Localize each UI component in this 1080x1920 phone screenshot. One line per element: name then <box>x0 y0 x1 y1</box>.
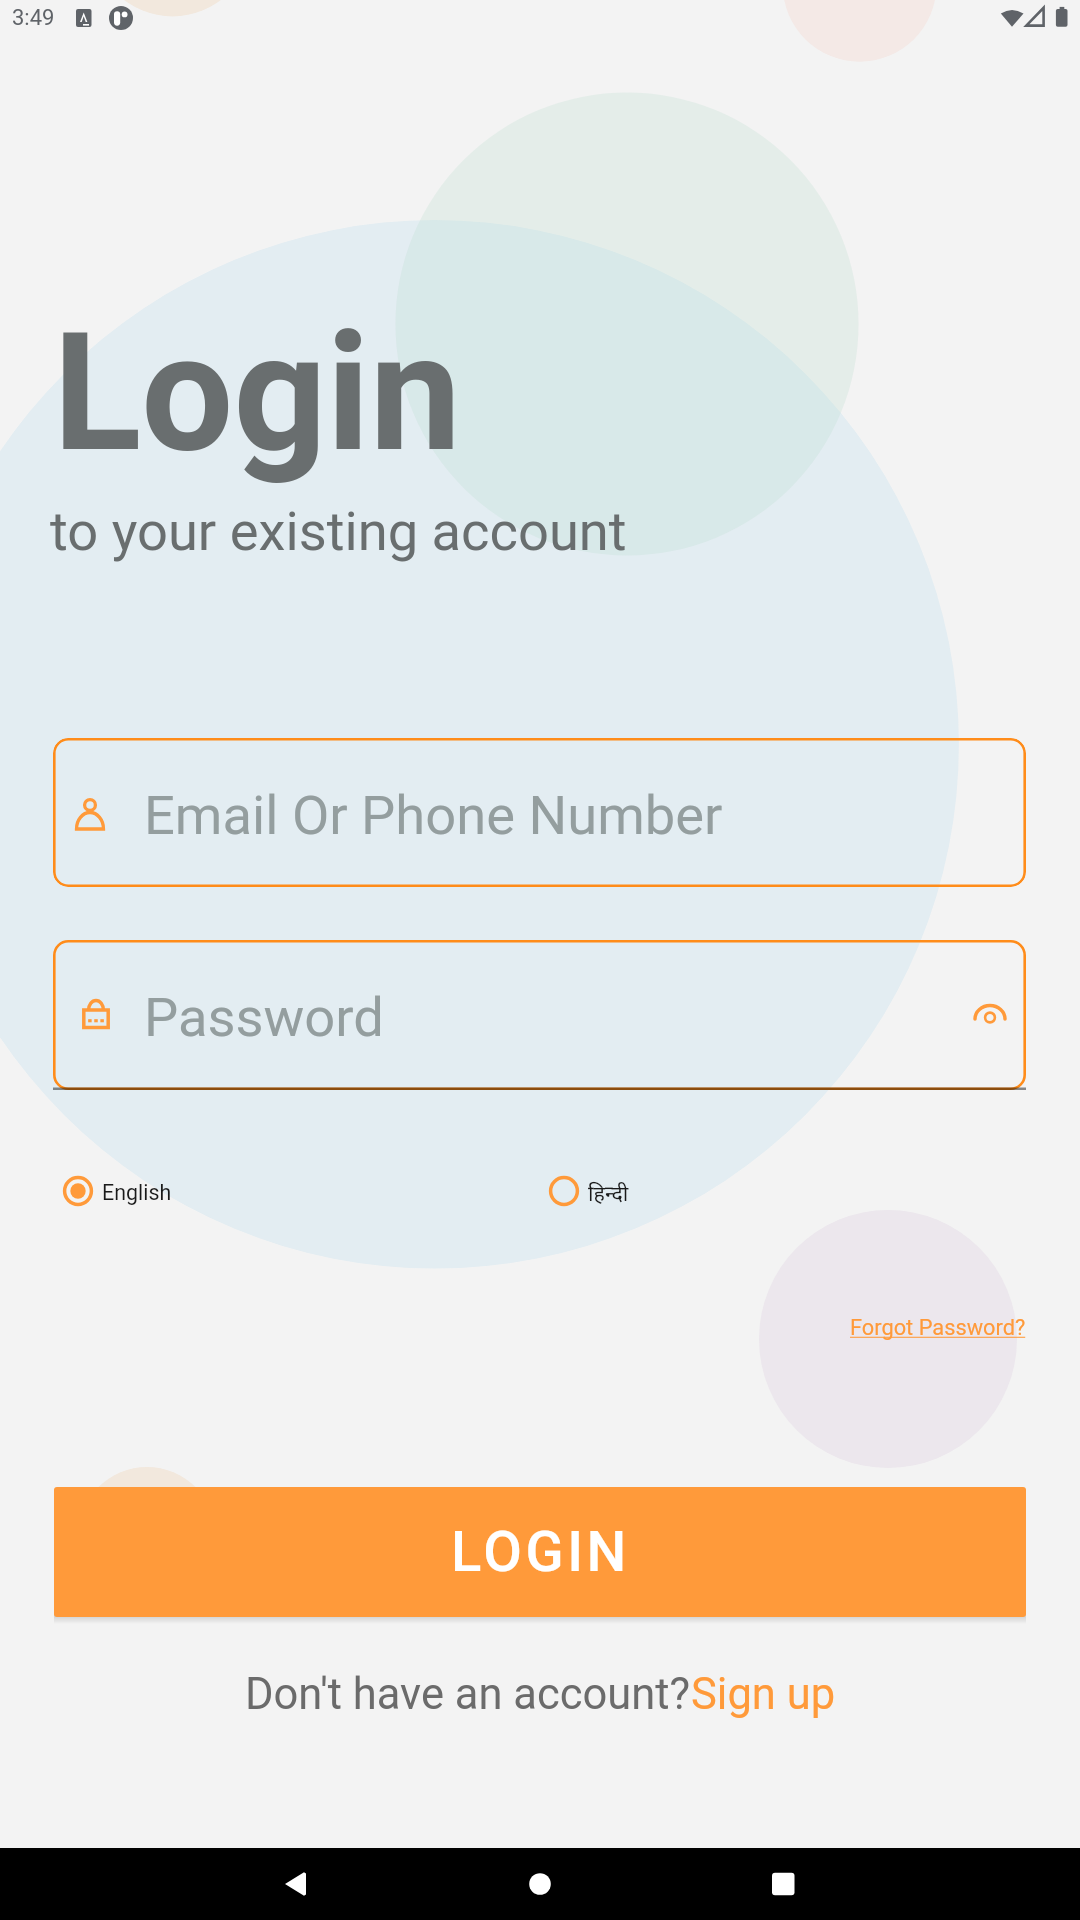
staticText: to your existing account <box>50 500 627 564</box>
staticText: English <box>102 1180 172 1205</box>
staticText: Password <box>144 986 384 1050</box>
button[interactable]: English <box>57 1167 172 1215</box>
staticText: Email Or Phone Number <box>144 784 723 848</box>
button[interactable]: LOGIN <box>54 1487 1026 1617</box>
staticText: Don't have an account? <box>245 1669 691 1720</box>
staticText: 3:49 <box>12 5 55 31</box>
staticText: LOGIN <box>451 1519 630 1585</box>
button[interactable]: Email Or Phone Number <box>53 738 1026 887</box>
staticText: Sign up <box>691 1669 836 1720</box>
button[interactable]: Forgot Password? <box>836 1306 1026 1350</box>
button[interactable]: Password <box>53 940 1026 1090</box>
button[interactable]: Sign up <box>691 1669 836 1720</box>
button[interactable]: Show password <box>954 979 1026 1051</box>
staticText: Login <box>53 298 462 489</box>
button[interactable]: हिन्दी <box>543 1167 629 1215</box>
staticText: Forgot Password? <box>850 1315 1026 1341</box>
staticText: हिन्दी <box>588 1178 629 1207</box>
